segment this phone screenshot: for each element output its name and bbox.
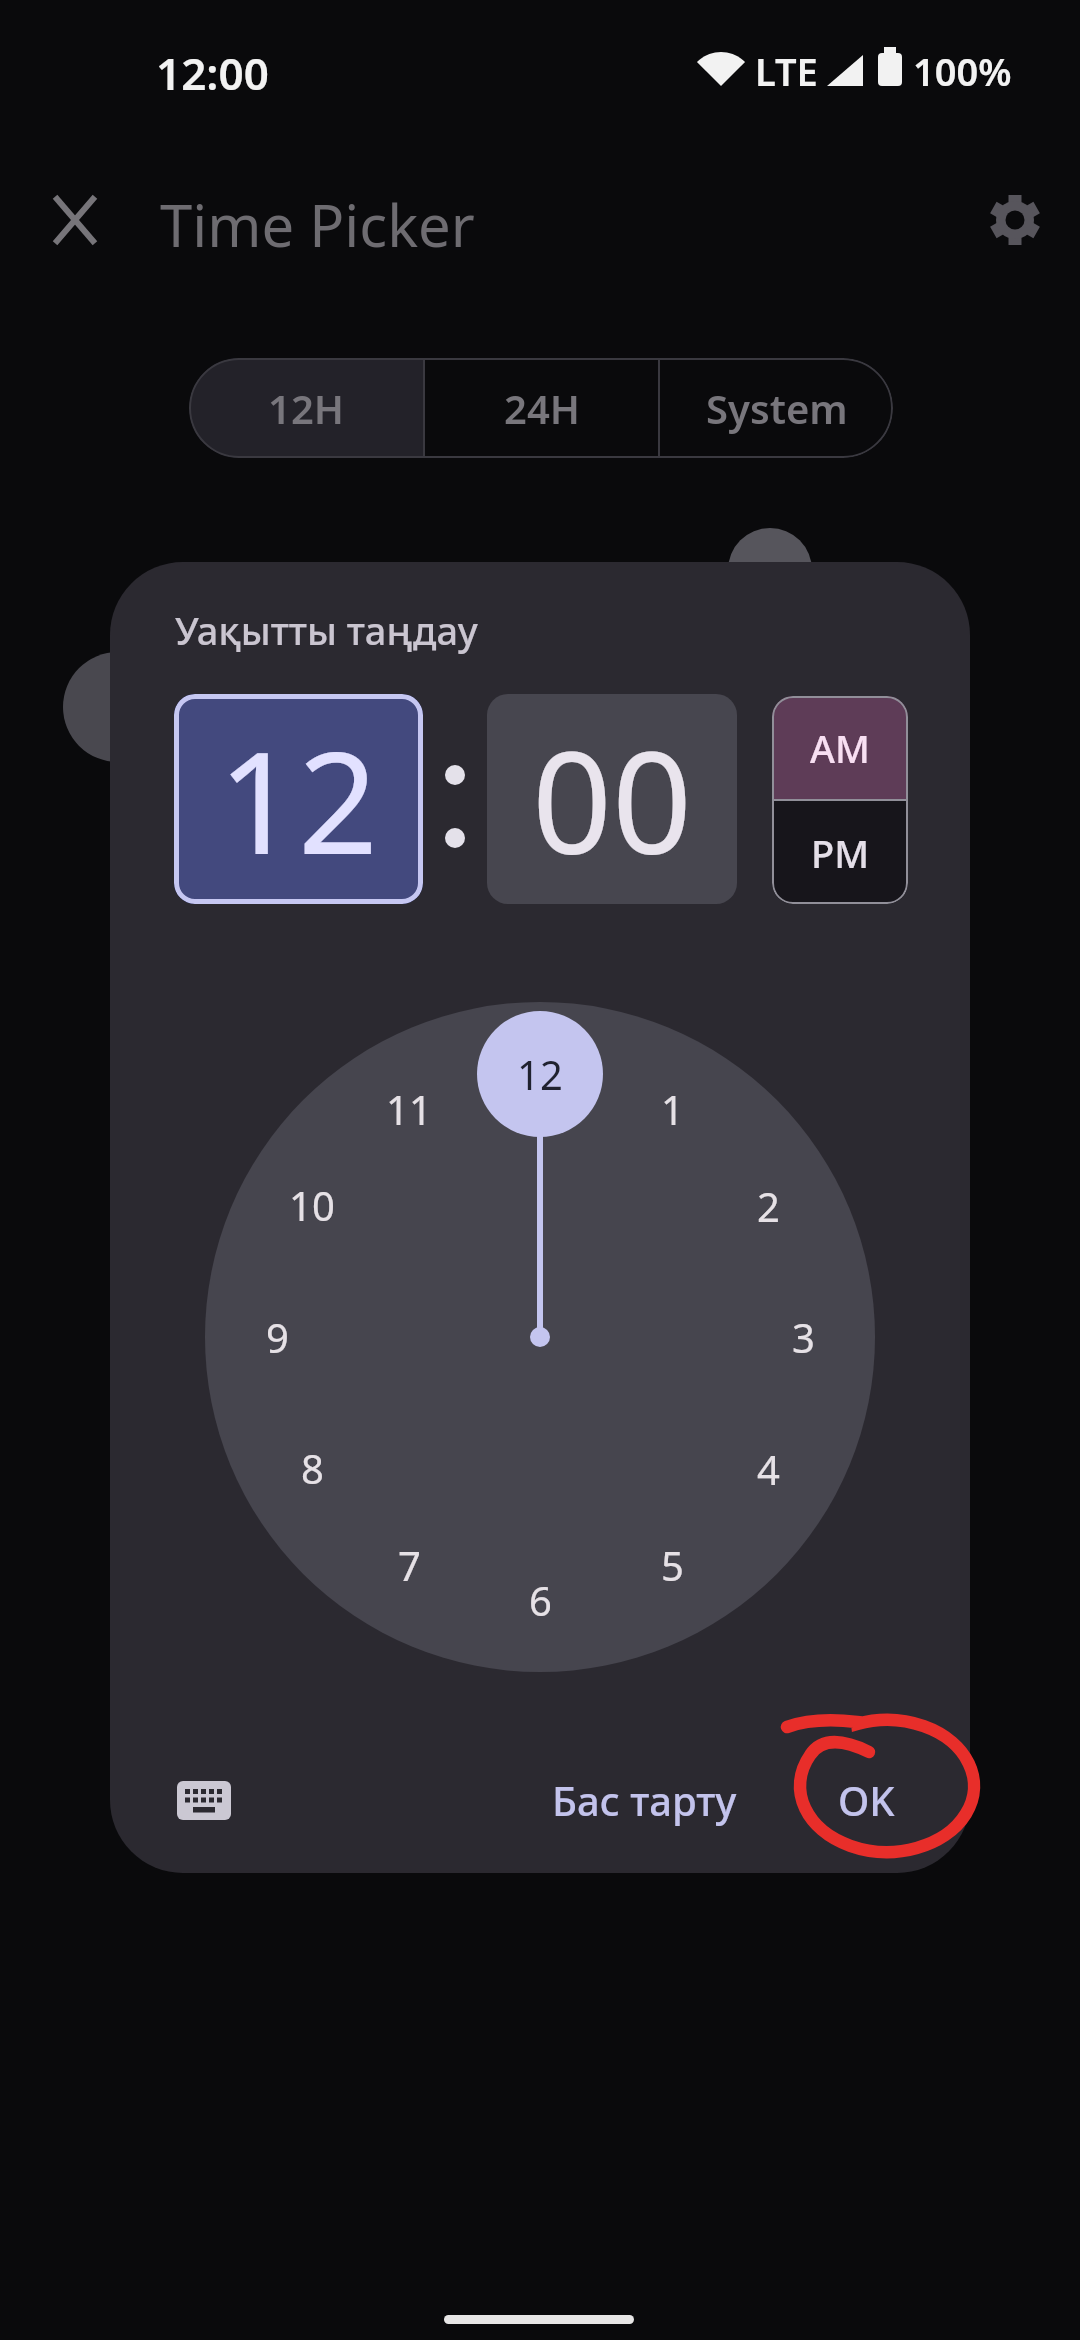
button[interactable]: 00 — [487, 694, 737, 904]
staticText: Time Picker — [160, 185, 475, 264]
staticText: 4 — [757, 1442, 780, 1496]
staticText: Бас тарту — [552, 1773, 737, 1827]
staticText: OK — [838, 1773, 895, 1827]
staticText: 12:00 — [156, 43, 269, 97]
staticText: 6 — [529, 1573, 552, 1627]
button[interactable]: Бас тарту — [530, 1762, 758, 1838]
staticText: LTE — [755, 45, 818, 95]
button[interactable]: AM — [772, 696, 908, 799]
button[interactable]: 12H — [189, 358, 423, 458]
staticText: 10 — [289, 1178, 335, 1232]
button[interactable] — [205, 1002, 875, 1672]
staticText: 100% — [913, 45, 1012, 95]
staticText: 7 — [398, 1538, 421, 1592]
button[interactable] — [987, 192, 1043, 248]
staticText: 1 — [661, 1082, 684, 1136]
staticText: AM — [810, 722, 870, 774]
staticText: 12H — [268, 381, 344, 435]
staticText: PM — [811, 827, 870, 879]
staticText: System — [706, 381, 848, 435]
staticText: 8 — [301, 1441, 324, 1495]
button[interactable]: OK — [806, 1762, 926, 1838]
button[interactable]: PM — [772, 801, 908, 904]
staticText: 2 — [757, 1179, 780, 1233]
staticText: 3 — [792, 1310, 815, 1364]
button[interactable] — [164, 1760, 244, 1840]
staticText: 12 — [517, 1047, 563, 1101]
staticText: 9 — [266, 1310, 289, 1364]
staticText: 11 — [386, 1082, 432, 1136]
button[interactable]: 12 — [174, 694, 423, 904]
button[interactable]: System — [660, 358, 893, 458]
staticText: 00 — [532, 704, 693, 895]
staticText: 5 — [661, 1538, 684, 1592]
staticText: 12 — [218, 704, 379, 895]
staticText: 24H — [504, 381, 580, 435]
button[interactable] — [47, 192, 103, 248]
staticText: Уақытты таңдау — [175, 604, 478, 656]
button[interactable]: 24H — [425, 358, 658, 458]
